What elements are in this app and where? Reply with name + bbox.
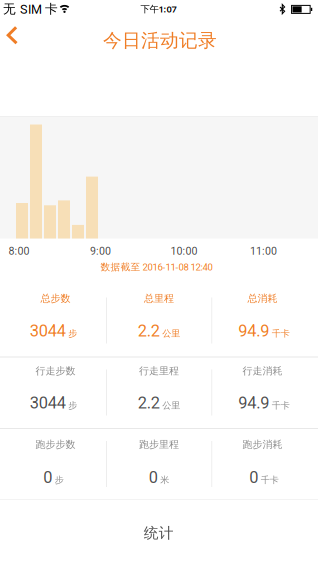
staticText: 行走步数 — [35, 365, 75, 377]
button[interactable]: 统计 — [0, 500, 318, 566]
staticText: 步 — [68, 328, 77, 339]
staticText: 跑步消耗 — [242, 438, 282, 451]
staticText: 3044 — [30, 321, 66, 341]
staticText: 总步数 — [40, 292, 70, 305]
staticText: 下午1:07 — [141, 3, 177, 15]
staticText: 米 — [160, 474, 169, 486]
staticText: 统计 — [144, 524, 174, 542]
staticText: 0 — [249, 468, 258, 487]
staticText: 10:00 — [170, 245, 197, 257]
staticText: 11:00 — [250, 245, 277, 257]
staticText: 总里程 — [144, 292, 174, 305]
staticText: 千卡 — [261, 474, 279, 486]
staticText: 千卡 — [272, 400, 290, 411]
staticText: 总消耗 — [247, 292, 277, 305]
staticText: 跑步里程 — [139, 438, 179, 451]
staticText: 无 SIM 卡 — [3, 1, 58, 17]
staticText: 公里 — [162, 400, 180, 411]
staticText: 公里 — [162, 328, 180, 339]
staticText: 8:00 — [8, 245, 29, 257]
staticText: 跑步步数 — [35, 438, 75, 451]
staticText: 2.2 — [138, 321, 160, 341]
staticText: 行走消耗 — [242, 365, 282, 377]
button[interactable] — [2, 23, 26, 48]
staticText: 0 — [149, 468, 158, 487]
staticText: 3044 — [30, 393, 66, 413]
staticText: 2.2 — [138, 393, 160, 413]
staticText: 步 — [68, 400, 77, 411]
staticText: 千卡 — [272, 328, 290, 339]
staticText: 今日活动记录 — [103, 29, 217, 52]
staticText: 数据截至 2016-11-08 12:40 — [100, 261, 212, 273]
staticText: 9:00 — [90, 245, 111, 257]
staticText: 94.9 — [238, 393, 269, 413]
staticText: 94.9 — [238, 321, 269, 341]
staticText: 0 — [43, 468, 52, 487]
staticText: 步 — [55, 474, 64, 486]
staticText: 行走里程 — [139, 365, 179, 377]
